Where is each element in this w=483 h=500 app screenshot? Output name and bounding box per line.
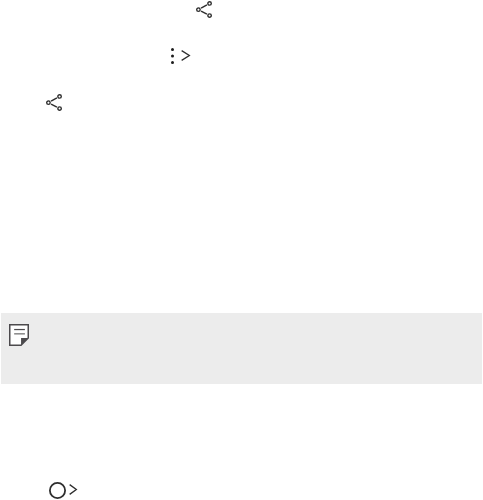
button[interactable] — [1, 313, 482, 384]
button[interactable]: More options — [171, 48, 174, 64]
button[interactable]: Share — [196, 1, 212, 18]
button[interactable]: Share — [46, 94, 62, 111]
button[interactable]: Expand — [181, 50, 190, 61]
button[interactable]: Record — [49, 482, 66, 499]
button[interactable]: Next — [69, 484, 77, 495]
